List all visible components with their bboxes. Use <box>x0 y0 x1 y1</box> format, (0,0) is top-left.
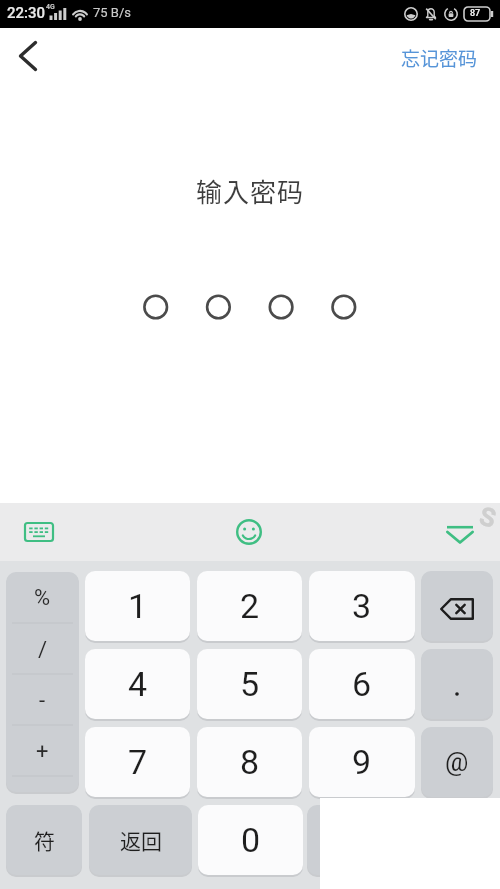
button[interactable]: + <box>6 737 79 767</box>
button[interactable]: 9 <box>309 727 415 797</box>
staticText: 忘记密码 <box>401 44 478 72</box>
staticText: 5 <box>240 664 260 704</box>
staticText: / <box>38 637 48 663</box>
button[interactable] <box>434 515 486 555</box>
staticText: 22:30 <box>7 4 46 22</box>
button[interactable]: 7 <box>85 727 190 797</box>
button[interactable] <box>307 805 414 875</box>
staticText: 输入密码 <box>196 172 305 210</box>
staticText: @ <box>445 747 469 777</box>
staticText: 0 <box>241 820 261 860</box>
button[interactable]: % <box>6 583 79 613</box>
staticText: 符 <box>34 825 55 855</box>
staticText: 2 <box>240 586 260 626</box>
staticText: % <box>34 585 51 611</box>
staticText: 9 <box>352 742 372 782</box>
button[interactable]: 8 <box>197 727 302 797</box>
staticText: S <box>477 501 499 533</box>
staticText: 75 B/s <box>93 5 132 20</box>
button[interactable]: @ <box>421 727 493 797</box>
button[interactable] <box>12 512 66 552</box>
staticText: 3 <box>352 586 372 626</box>
button[interactable]: / <box>6 635 79 665</box>
button[interactable]: 0 <box>198 805 303 875</box>
staticText: 1 <box>128 586 148 626</box>
button[interactable]: 4 <box>85 649 190 719</box>
staticText: 4G <box>46 3 55 11</box>
staticText: + <box>36 739 49 765</box>
staticText: - <box>39 688 46 714</box>
button[interactable]: 符 <box>6 805 82 875</box>
button[interactable] <box>4 32 52 80</box>
button[interactable]: 忘记密码 <box>401 44 478 72</box>
staticText: 返回 <box>120 825 162 855</box>
button[interactable]: 返回 <box>89 805 192 875</box>
button[interactable]: 2 <box>197 571 302 641</box>
button[interactable]: 1 <box>85 571 190 641</box>
button[interactable]: 6 <box>309 649 415 719</box>
button[interactable] <box>421 649 493 719</box>
staticText: 7 <box>128 742 148 782</box>
staticText: 8 <box>240 742 260 782</box>
button[interactable] <box>421 571 493 641</box>
staticText: 6 <box>352 664 372 704</box>
button[interactable]: 3 <box>309 571 415 641</box>
button[interactable]: 5 <box>197 649 302 719</box>
button[interactable] <box>223 506 275 558</box>
button[interactable]: - <box>6 686 79 716</box>
staticText: 87 <box>470 8 481 19</box>
staticText: 4 <box>128 664 148 704</box>
button[interactable] <box>6 572 79 792</box>
